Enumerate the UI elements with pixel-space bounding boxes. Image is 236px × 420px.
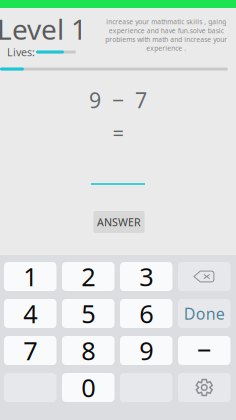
button[interactable]: 0 (62, 373, 114, 402)
staticText: ANSWER (97, 215, 141, 229)
button[interactable]: 2 (62, 262, 114, 291)
button[interactable]: Delete (178, 262, 230, 291)
staticText: 4 (23, 297, 37, 330)
staticText: 5 (81, 297, 95, 330)
button[interactable]: 5 (62, 299, 114, 328)
staticText: 7 (135, 86, 147, 114)
button[interactable]: Keyboard settings (178, 373, 230, 402)
staticText: 3 (139, 260, 153, 293)
staticText: Level 1 (0, 10, 87, 48)
button[interactable]: 1 (4, 262, 56, 291)
button[interactable]: ANSWER (93, 211, 144, 233)
staticText: 9 (89, 86, 101, 114)
staticText: 8 (81, 334, 95, 367)
staticText: 2 (81, 260, 95, 293)
staticText: 1 (23, 260, 37, 293)
button[interactable]: 3 (120, 262, 172, 291)
staticText: Lives: (7, 45, 35, 59)
staticText: 7 (23, 334, 37, 367)
staticText: increase your mathmatic skills , gaing e… (105, 17, 227, 53)
staticText: Done (184, 303, 225, 324)
staticText: 6 (139, 297, 153, 330)
button[interactable]: 7 (4, 336, 56, 365)
button[interactable]: 8 (62, 336, 114, 365)
button[interactable]: Done (178, 299, 230, 328)
button[interactable]: 4 (4, 299, 56, 328)
button[interactable]: 6 (120, 299, 172, 328)
staticText: = (112, 120, 123, 146)
staticText: 0 (81, 371, 95, 404)
staticText: − (112, 86, 124, 114)
button[interactable]: 9 (120, 336, 172, 365)
staticText: 9 (139, 334, 153, 367)
button[interactable]: Minus (178, 336, 230, 365)
